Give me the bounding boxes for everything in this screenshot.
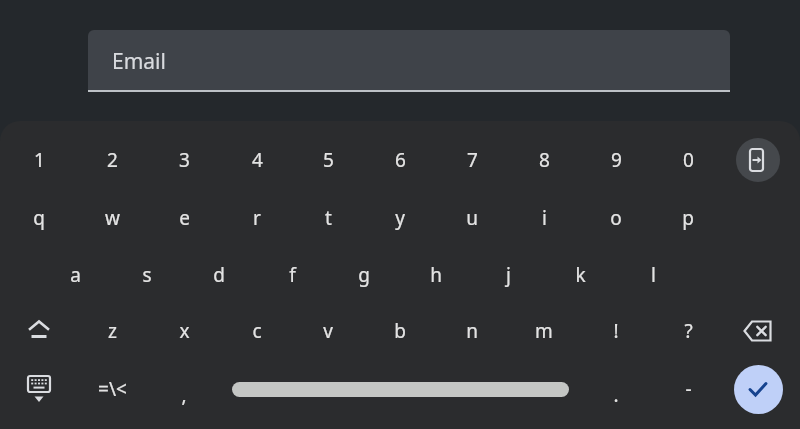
staticText: 5 (323, 147, 334, 173)
button[interactable]: w (80, 192, 144, 244)
button[interactable]: Backspace (726, 304, 790, 358)
button[interactable]: z (80, 305, 144, 357)
button[interactable]: l (621, 249, 685, 301)
button[interactable]: 7 (440, 134, 504, 186)
staticText: f (289, 262, 296, 288)
button[interactable]: ! (584, 305, 648, 357)
staticText: v (323, 318, 333, 344)
staticText: y (395, 205, 405, 231)
staticText: =\< (98, 376, 127, 402)
staticText: - (685, 376, 692, 402)
staticText: 8 (539, 147, 550, 173)
button[interactable]: q (7, 192, 71, 244)
button[interactable]: f (260, 249, 324, 301)
staticText: 4 (252, 147, 263, 173)
button[interactable]: 2 (80, 134, 144, 186)
staticText: l (651, 262, 656, 288)
button[interactable]: a (43, 249, 107, 301)
button[interactable]: Shift (7, 304, 71, 358)
button[interactable]: 5 (296, 134, 360, 186)
button[interactable]: b (368, 305, 432, 357)
staticText: k (575, 262, 586, 288)
staticText: w (105, 205, 120, 231)
button[interactable]: 1 (7, 134, 71, 186)
button[interactable]: i (512, 192, 576, 244)
staticText: h (430, 262, 442, 288)
button[interactable]: p (656, 192, 720, 244)
staticText: ? (684, 318, 693, 344)
staticText: d (213, 262, 225, 288)
staticText: 1 (34, 147, 45, 173)
button[interactable]: u (440, 192, 504, 244)
button[interactable]: n (440, 305, 504, 357)
button[interactable]: y (368, 192, 432, 244)
staticText: z (108, 318, 117, 344)
button[interactable]: Change keyboard (7, 362, 71, 416)
staticText: 9 (611, 147, 622, 173)
button[interactable]: h (404, 249, 468, 301)
staticText: , (181, 382, 187, 408)
button[interactable]: t (296, 192, 360, 244)
staticText: 2 (107, 147, 118, 173)
button[interactable]: Next field (728, 133, 788, 187)
button[interactable]: s (115, 249, 179, 301)
staticText: g (358, 262, 370, 288)
button[interactable]: m (512, 305, 576, 357)
button[interactable]: v (296, 305, 360, 357)
button[interactable]: r (225, 192, 289, 244)
button[interactable]: Space (232, 362, 569, 416)
button[interactable]: g (332, 249, 396, 301)
button[interactable]: Email (88, 30, 730, 92)
staticText: o (610, 205, 622, 231)
staticText: . (613, 382, 619, 408)
button[interactable]: 6 (368, 134, 432, 186)
button[interactable]: . (584, 369, 648, 421)
button[interactable]: d (187, 249, 251, 301)
staticText: e (179, 205, 190, 231)
button[interactable]: x (152, 305, 216, 357)
staticText: 0 (683, 147, 694, 173)
button[interactable]: Done (728, 361, 788, 417)
button[interactable]: 9 (584, 134, 648, 186)
button[interactable]: - (656, 363, 720, 415)
button[interactable]: 8 (512, 134, 576, 186)
staticText: x (179, 318, 190, 344)
button[interactable]: j (476, 249, 540, 301)
staticText: a (70, 262, 81, 288)
button[interactable]: e (152, 192, 216, 244)
button[interactable]: 0 (656, 134, 720, 186)
button[interactable]: =\< (80, 363, 144, 415)
staticText: m (535, 318, 553, 344)
staticText: u (466, 205, 478, 231)
staticText: b (394, 318, 406, 344)
button[interactable]: ? (656, 305, 720, 357)
button[interactable]: o (584, 192, 648, 244)
staticText: Email (112, 47, 166, 76)
button[interactable]: k (548, 249, 612, 301)
staticText: 6 (395, 147, 406, 173)
staticText: p (682, 205, 694, 231)
button[interactable]: , (152, 369, 216, 421)
staticText: ! (613, 318, 619, 344)
staticText: 3 (179, 147, 190, 173)
button[interactable]: c (225, 305, 289, 357)
staticText: j (506, 262, 511, 288)
staticText: i (542, 205, 547, 231)
staticText: r (253, 205, 261, 231)
button[interactable]: 4 (225, 134, 289, 186)
button[interactable]: 3 (152, 134, 216, 186)
staticText: q (33, 205, 45, 231)
staticText: 7 (467, 147, 478, 173)
staticText: s (142, 262, 152, 288)
staticText: n (466, 318, 478, 344)
staticText: c (252, 318, 262, 344)
staticText: t (325, 205, 332, 231)
